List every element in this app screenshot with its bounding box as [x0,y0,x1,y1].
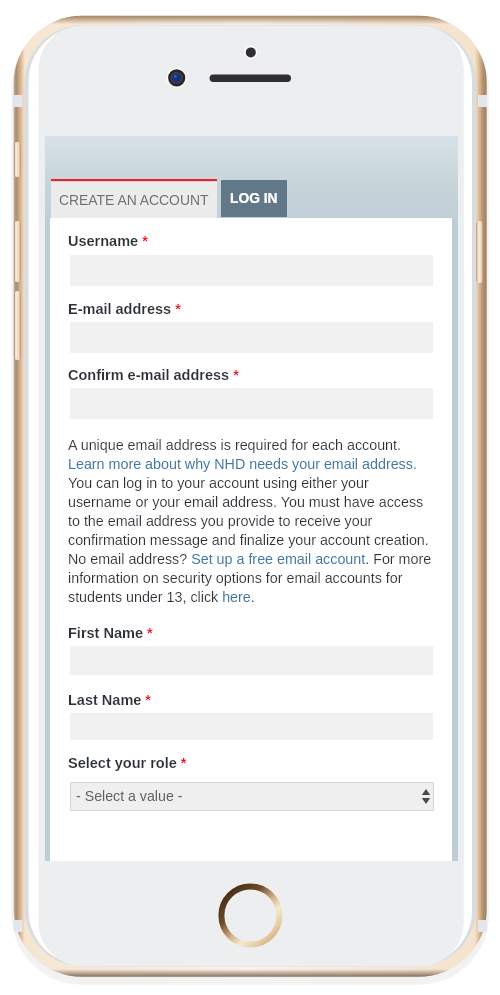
staticText: Username * [68,233,148,249]
staticText: Last Name * [68,692,152,708]
staticText: - Select a value - [76,788,183,804]
staticText: Confirm e-mail address * [68,367,239,383]
staticText: Select your role * [68,755,187,771]
staticText: E-mail address * [68,301,181,317]
staticText: First Name * [68,625,153,641]
button[interactable]: CREATE AN ACCOUNT [51,182,217,218]
staticText: CREATE AN ACCOUNT [59,192,209,208]
staticText: LOG IN [230,191,278,206]
button[interactable]: LOG IN [221,180,287,217]
staticText: A unique email address is required for e… [68,437,435,605]
button[interactable]: - Select a value - [70,782,434,811]
